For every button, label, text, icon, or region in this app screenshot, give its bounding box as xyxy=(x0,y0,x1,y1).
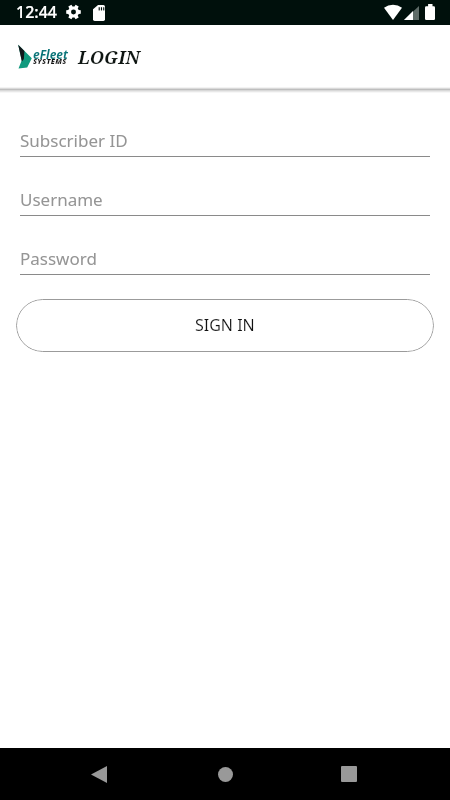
button[interactable]: Username xyxy=(20,188,430,216)
staticText: 12:44 xyxy=(16,1,57,23)
button[interactable]: Back xyxy=(75,748,123,800)
staticText: eFleet xyxy=(33,46,68,62)
staticText: Subscriber ID xyxy=(20,129,128,152)
staticText: Password xyxy=(20,247,97,270)
button[interactable]: SIGN IN xyxy=(16,299,434,352)
staticText: SIGN IN xyxy=(195,314,255,336)
button[interactable]: Home xyxy=(201,748,249,800)
button[interactable]: Password xyxy=(20,247,430,275)
button[interactable]: Subscriber ID xyxy=(20,129,430,157)
staticText: LOGIN xyxy=(78,45,140,70)
staticText: Username xyxy=(20,188,103,211)
staticText: SYSTEMS xyxy=(33,56,67,66)
button[interactable]: Recents xyxy=(325,748,373,800)
